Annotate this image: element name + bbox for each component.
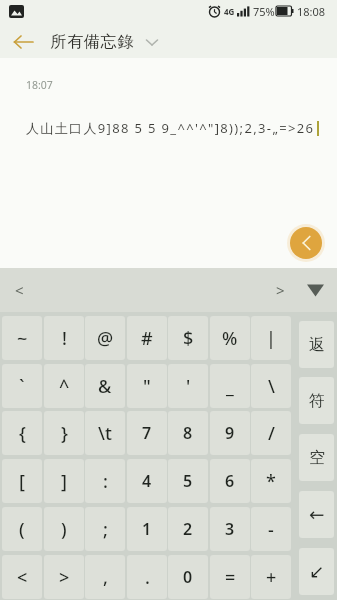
button[interactable]: " — [127, 364, 167, 408]
staticText: ; — [103, 517, 108, 542]
button[interactable]: 符 — [299, 377, 334, 424]
button[interactable]: | — [251, 316, 291, 360]
staticText: . — [145, 565, 150, 590]
button[interactable]: > — [265, 268, 295, 312]
button[interactable]: ~ — [2, 316, 42, 360]
button[interactable]: 3 — [210, 507, 250, 551]
staticText: 所有備忘錄 — [50, 32, 134, 52]
button[interactable]: + — [251, 555, 291, 599]
button[interactable]: 返 — [299, 321, 334, 368]
button[interactable]: \ — [251, 364, 291, 408]
button[interactable]: { — [2, 411, 42, 455]
button[interactable]: 5 — [168, 459, 208, 503]
staticText: @ — [97, 326, 114, 351]
staticText: 2 — [183, 518, 193, 540]
button[interactable]: ^ — [44, 364, 84, 408]
staticText: ( — [19, 517, 25, 542]
button[interactable]: < — [2, 555, 42, 599]
button[interactable]: = — [210, 555, 250, 599]
button[interactable]: ← — [299, 491, 334, 538]
button[interactable]: 0 — [168, 555, 208, 599]
button[interactable]: > — [44, 555, 84, 599]
button[interactable]: 6 — [210, 459, 250, 503]
button[interactable]: ] — [44, 459, 84, 503]
staticText: & — [98, 374, 112, 399]
staticText: 9 — [225, 422, 235, 444]
button[interactable]: # — [127, 316, 167, 360]
button[interactable]: ↙ — [299, 548, 334, 595]
button[interactable]: ' — [168, 364, 208, 408]
staticText: = — [225, 565, 236, 590]
button[interactable]: ! — [44, 316, 84, 360]
staticText: < — [17, 565, 28, 590]
staticText: ~ — [17, 326, 28, 351]
button[interactable]: / — [251, 411, 291, 455]
staticText: \ — [268, 374, 275, 399]
button[interactable]: , — [85, 555, 125, 599]
staticText: > — [59, 565, 70, 590]
staticText: % — [222, 326, 238, 351]
staticText: 18:07 — [26, 78, 53, 92]
staticText: ^ — [59, 374, 70, 399]
staticText: _ — [226, 374, 234, 399]
staticText: - — [268, 517, 274, 542]
button[interactable]: 所有備忘錄 — [50, 29, 158, 55]
staticText: 18:08 — [297, 4, 326, 19]
button[interactable]: - — [251, 507, 291, 551]
staticText: 6 — [225, 470, 235, 492]
staticText: 符 — [309, 391, 325, 411]
staticText: ] — [61, 469, 67, 494]
staticText: 空 — [309, 448, 325, 468]
staticText: 3 — [225, 518, 235, 540]
staticText: 5 — [183, 470, 193, 492]
staticText: > — [276, 280, 285, 300]
staticText: + — [266, 565, 277, 590]
staticText: ' — [186, 374, 191, 399]
staticText: | — [266, 326, 276, 351]
button[interactable]: : — [85, 459, 125, 503]
button[interactable]: [ — [2, 459, 42, 503]
button[interactable]: ; — [85, 507, 125, 551]
staticText: ← — [309, 504, 325, 526]
button[interactable]: * — [251, 459, 291, 503]
button[interactable]: & — [85, 364, 125, 408]
button[interactable]: 7 — [127, 411, 167, 455]
staticText: [ — [19, 469, 25, 494]
staticText: < — [15, 280, 24, 300]
button[interactable]: < — [4, 268, 34, 312]
button[interactable]: \t — [85, 411, 125, 455]
button[interactable] — [300, 268, 330, 312]
button[interactable] — [287, 224, 325, 262]
button[interactable]: 4 — [127, 459, 167, 503]
button[interactable]: @ — [85, 316, 125, 360]
button[interactable]: ) — [44, 507, 84, 551]
staticText: 4 — [142, 470, 152, 492]
button[interactable]: 1 — [127, 507, 167, 551]
button[interactable]: 2 — [168, 507, 208, 551]
staticText: / — [268, 421, 275, 446]
staticText: 1 — [142, 518, 152, 540]
staticText: 0 — [183, 566, 193, 588]
staticText: 8 — [183, 422, 193, 444]
button[interactable]: ` — [2, 364, 42, 408]
button[interactable]: } — [44, 411, 84, 455]
staticText: , — [103, 565, 108, 590]
button[interactable]: % — [210, 316, 250, 360]
button[interactable]: 8 — [168, 411, 208, 455]
button[interactable]: . — [127, 555, 167, 599]
button[interactable]: _ — [210, 364, 250, 408]
staticText: { — [19, 421, 26, 446]
staticText: 人山土口人9]88 5 5 9_^^'^"]8));2,3-„=>26 — [26, 119, 332, 137]
staticText: : — [103, 469, 108, 494]
staticText: ) — [61, 517, 67, 542]
button[interactable]: 空 — [299, 434, 334, 481]
button[interactable]: 9 — [210, 411, 250, 455]
staticText: ! — [62, 326, 67, 351]
staticText: 4G — [224, 6, 235, 17]
button[interactable]: ( — [2, 507, 42, 551]
staticText: # — [141, 326, 153, 351]
button[interactable] — [6, 29, 40, 55]
staticText: } — [61, 421, 68, 446]
button[interactable]: $ — [168, 316, 208, 360]
staticText: 75% — [253, 4, 275, 19]
